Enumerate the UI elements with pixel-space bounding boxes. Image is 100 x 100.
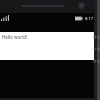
staticText: 1000 — [92, 35, 100, 39]
staticText: 900 — [92, 47, 100, 51]
staticText: Hello world! — [2, 34, 28, 40]
button[interactable]: Hello world! — [0, 32, 94, 60]
staticText: 8:17 — [85, 16, 93, 21]
staticText: 1000 — [92, 59, 100, 63]
other: Signal strength — [1, 15, 9, 21]
other: Battery — [75, 16, 83, 21]
